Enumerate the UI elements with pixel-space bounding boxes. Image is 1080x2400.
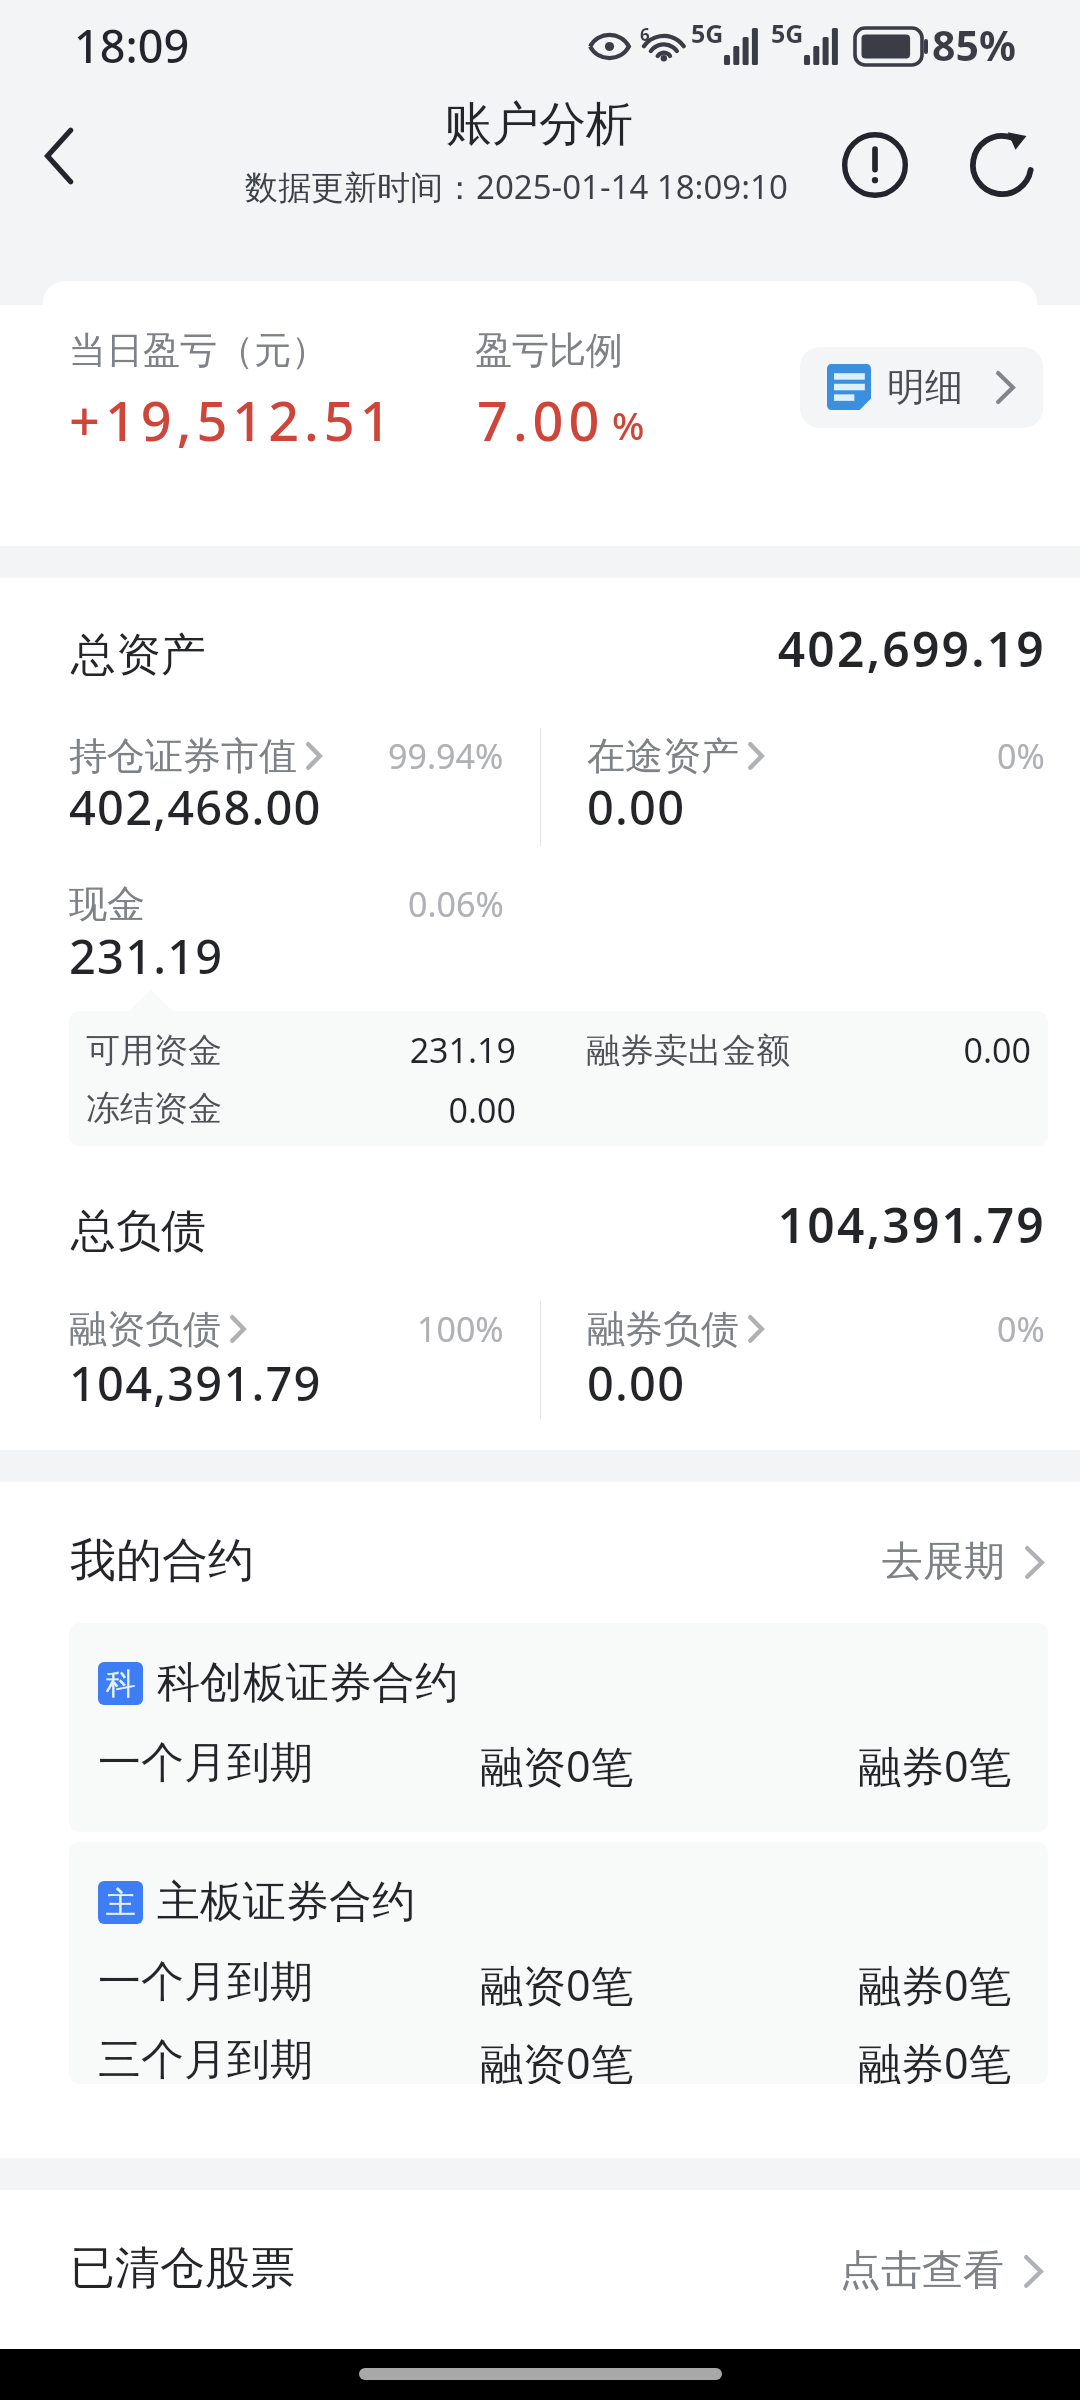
staticText: 0.00 (836, 1027, 1031, 1073)
button[interactable]: Refresh (955, 118, 1049, 212)
staticText: 去展期 (882, 1536, 1005, 1588)
staticText: 5G (771, 16, 804, 50)
button[interactable]: 持仓证券市值 (69, 732, 504, 780)
button[interactable]: 在途资产 (587, 732, 1045, 780)
staticText: 0.06% (408, 881, 504, 927)
staticText: 231.19 (69, 924, 224, 988)
staticText: 在途资产 (587, 732, 739, 780)
staticText: 已清仓股票 (70, 2240, 295, 2297)
staticText: 6 (640, 23, 650, 46)
button[interactable]: Risk info (828, 118, 922, 212)
button[interactable]: 去展期 (874, 1528, 1052, 1596)
staticText: 我的合约 (70, 1532, 254, 1590)
staticText: 持仓证券市值 (69, 732, 297, 780)
staticText: 科创板证券合约 (157, 1656, 458, 1710)
staticText: 主板证券合约 (157, 1875, 415, 1929)
staticText: 231.19 (346, 1027, 516, 1073)
button[interactable]: Back (13, 111, 103, 201)
staticText: 三个月到期 (98, 2033, 313, 2084)
staticText: 融券卖出金额 (586, 1029, 836, 1072)
button[interactable]: 明细 (800, 347, 1043, 428)
staticText: 7.00 (477, 383, 605, 457)
button[interactable]: 已清仓股票 (0, 2190, 1080, 2349)
staticText: 100% (417, 1306, 504, 1352)
staticText: +19,512.51 (69, 383, 396, 457)
staticText: 融资0笔 (480, 1955, 634, 2014)
staticText: 冻结资金 (86, 1087, 346, 1130)
staticText: 融资负债 (69, 1305, 221, 1353)
staticText: 点击查看 (840, 2245, 1004, 2297)
staticText: 0% (997, 733, 1045, 779)
staticText: 融券负债 (587, 1305, 739, 1353)
staticText: 融券0笔 (858, 1736, 1012, 1795)
button[interactable]: 主 (69, 1842, 1048, 2084)
staticText: 0.00 (587, 1351, 686, 1415)
staticText: 当日盈亏（元） (69, 327, 328, 374)
staticText: 85% (932, 17, 1016, 73)
staticText: 总资产 (71, 627, 206, 684)
staticText: % (612, 399, 645, 451)
staticText: 账户分析 (445, 95, 633, 154)
staticText: 主 (106, 1884, 136, 1922)
staticText: 5G (691, 16, 724, 50)
staticText: 明细 (887, 363, 963, 411)
staticText: 18:09 (74, 15, 190, 76)
staticText: 104,391.79 (700, 1192, 1046, 1257)
staticText: 融资0笔 (480, 2033, 634, 2084)
staticText: 99.94% (388, 733, 504, 779)
staticText: 科 (106, 1665, 136, 1703)
staticText: 融券0笔 (858, 2033, 1012, 2084)
button[interactable]: 融资负债 (69, 1305, 504, 1353)
staticText: 总负债 (71, 1203, 206, 1260)
button[interactable]: 融券负债 (587, 1305, 1045, 1353)
staticText: 可用资金 (86, 1029, 346, 1072)
staticText: 融资0笔 (480, 1736, 634, 1795)
staticText: 0% (997, 1306, 1045, 1352)
staticText: 0.00 (346, 1087, 516, 1130)
staticText: 盈亏比例 (475, 327, 623, 374)
staticText: 数据更新时间：2025-01-14 18:09:10 (245, 164, 788, 209)
staticText: 0.00 (587, 775, 686, 839)
button[interactable]: 科 (69, 1623, 1048, 1832)
staticText: 现金 (69, 880, 145, 928)
staticText: 融券0笔 (858, 1955, 1012, 2014)
staticText: 402,468.00 (69, 775, 322, 839)
staticText: 402,699.19 (700, 616, 1046, 681)
staticText: 一个月到期 (98, 1955, 313, 2009)
staticText: 104,391.79 (69, 1351, 322, 1415)
staticText: 一个月到期 (98, 1736, 313, 1790)
